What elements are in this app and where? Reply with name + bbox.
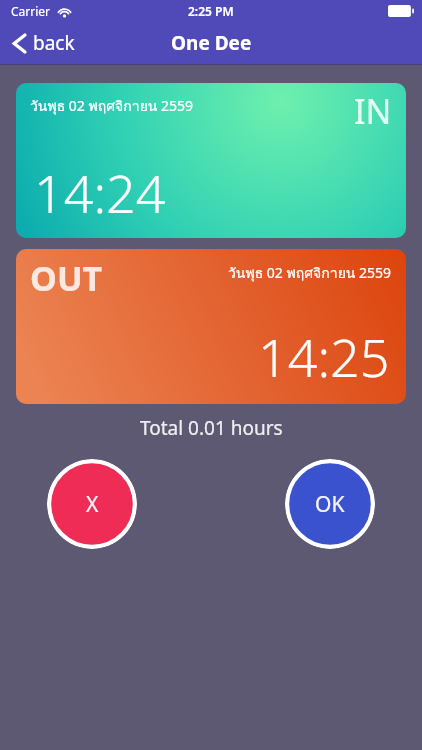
button[interactable]: OK (285, 459, 375, 549)
staticText: Total 0.01 hours (140, 415, 283, 441)
staticText: back (33, 30, 75, 56)
button[interactable]: วันพุธ 02 พฤศจิกายน 2559 (16, 83, 406, 238)
staticText: OK (315, 490, 345, 519)
staticText: วันพุธ 02 พฤศจิกายน 2559 (30, 95, 194, 117)
staticText: OUT (30, 255, 103, 301)
staticText: Carrier (11, 3, 51, 19)
staticText: 14:24 (34, 157, 166, 228)
staticText: X (86, 490, 99, 519)
staticText: 2:25 PM (188, 3, 234, 19)
staticText: One Dee (171, 30, 252, 56)
button[interactable]: back (0, 26, 89, 60)
staticText: วันพุธ 02 พฤศจิกายน 2559 (228, 262, 392, 284)
staticText: IN (354, 88, 392, 134)
staticText: 14:25 (258, 321, 390, 392)
button[interactable]: OUT (16, 249, 406, 404)
button[interactable]: Cancel (47, 459, 137, 549)
